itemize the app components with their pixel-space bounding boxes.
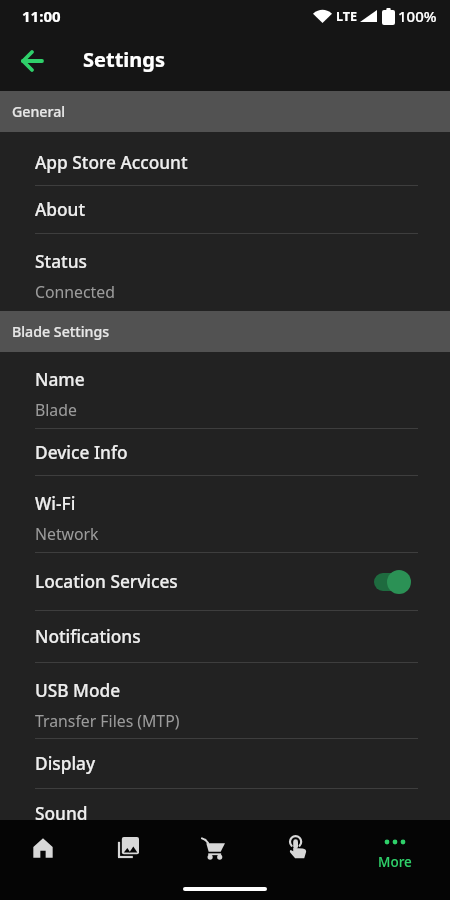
button[interactable] — [170, 820, 255, 876]
button[interactable]: Sound — [0, 789, 450, 839]
staticText: LTE — [336, 8, 357, 25]
staticText: Blade — [35, 399, 77, 421]
staticText: Network — [35, 523, 99, 545]
staticText: Name — [35, 368, 85, 392]
button[interactable]: Wi-Fi — [0, 476, 450, 553]
staticText: More — [378, 853, 412, 871]
staticText: Device Info — [35, 441, 128, 465]
staticText: General — [12, 102, 66, 121]
button[interactable] — [85, 820, 170, 876]
button[interactable]: About — [0, 186, 450, 234]
button[interactable] — [255, 820, 340, 876]
staticText: Wi-Fi — [35, 492, 76, 516]
button[interactable]: USB Mode — [0, 663, 450, 739]
staticText: Notifications — [35, 625, 141, 649]
button[interactable]: Notifications — [0, 611, 450, 663]
staticText: Transfer Files (MTP) — [35, 710, 180, 732]
staticText: Connected — [35, 281, 115, 303]
staticText: Settings — [83, 46, 165, 73]
staticText: Sound — [35, 802, 88, 826]
button[interactable]: More — [340, 820, 450, 876]
staticText: 11:00 — [22, 6, 61, 26]
button[interactable]: Device Info — [0, 429, 450, 476]
staticText: Blade Settings — [12, 322, 110, 341]
staticText: Display — [35, 752, 96, 776]
button[interactable] — [0, 820, 85, 876]
button[interactable]: App Store Account — [0, 132, 450, 186]
staticText: Location Services — [35, 570, 178, 594]
staticText: App Store Account — [35, 151, 188, 175]
staticText: Status — [35, 250, 87, 274]
button[interactable]: Display — [0, 739, 450, 789]
button[interactable]: Status — [0, 234, 450, 311]
button[interactable] — [16, 45, 48, 77]
button[interactable]: Location Services — [0, 553, 450, 611]
staticText: USB Mode — [35, 679, 121, 703]
staticText: 100% — [398, 6, 437, 26]
button[interactable]: Name — [0, 352, 450, 429]
staticText: About — [35, 198, 86, 222]
